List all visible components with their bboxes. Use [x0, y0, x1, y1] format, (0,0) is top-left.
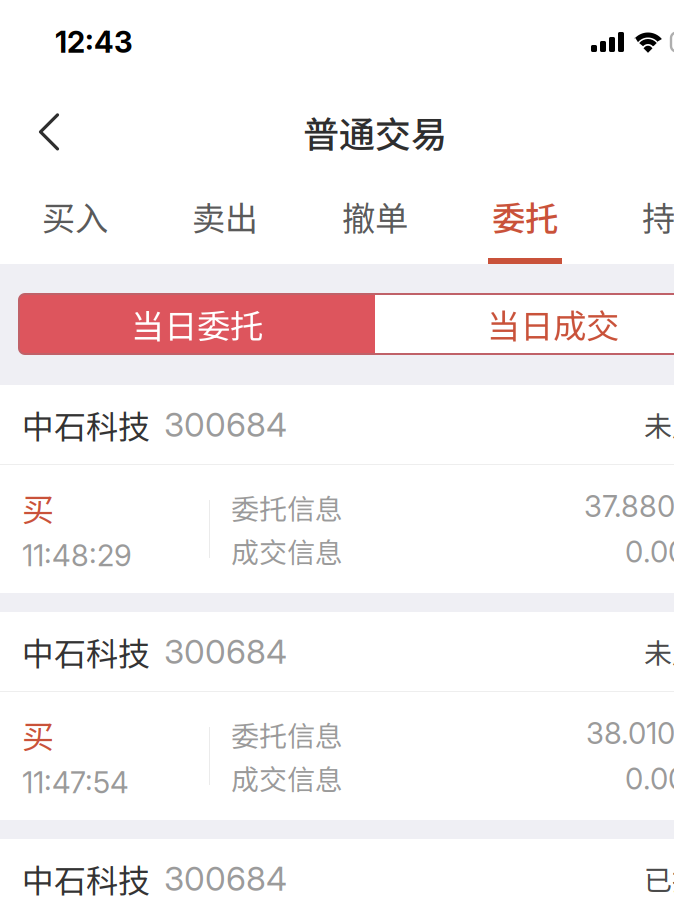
staticText: 普通交易: [303, 106, 447, 158]
staticText: 持仓: [642, 192, 674, 240]
staticText: 未成交: [644, 404, 674, 445]
staticText: 当日委托: [131, 300, 263, 348]
staticText: 买: [22, 485, 54, 531]
staticText: 委托信息: [231, 714, 343, 754]
staticText: 300684: [164, 631, 287, 672]
staticText: 11:48:29: [22, 538, 132, 573]
staticText: 买: [22, 712, 54, 758]
staticText: 买入: [42, 192, 108, 240]
button[interactable]: 买入: [0, 180, 150, 264]
staticText: 中石科技: [22, 628, 150, 675]
staticText: 12:43: [55, 24, 133, 60]
staticText: 300684: [164, 858, 287, 899]
staticText: 300684: [164, 404, 287, 445]
staticText: 中石科技: [22, 855, 150, 902]
staticText: 中石科技: [22, 401, 150, 448]
staticText: 卖出: [192, 192, 258, 240]
button[interactable]: 当日成交: [375, 294, 674, 354]
staticText: 未成交: [644, 631, 674, 672]
button[interactable]: 卖出: [150, 180, 300, 264]
button[interactable]: 撤单: [300, 180, 450, 264]
staticText: 委托: [492, 192, 558, 240]
button[interactable]: 委托: [450, 180, 600, 264]
staticText: 37.880/100: [584, 488, 674, 524]
staticText: 成交信息: [231, 530, 343, 571]
button[interactable]: 中石科技: [0, 385, 674, 593]
button[interactable]: 中石科技: [0, 612, 674, 820]
button[interactable]: 返回: [20, 101, 78, 163]
button[interactable]: 当日委托: [19, 294, 375, 354]
staticText: 0.000/0: [625, 534, 674, 569]
staticText: 38.010/100: [586, 715, 674, 751]
staticText: 0.000/0: [625, 761, 674, 796]
staticText: 撤单: [342, 192, 408, 240]
staticText: 当日成交: [487, 300, 619, 348]
staticText: 委托信息: [231, 487, 343, 527]
staticText: 11:47:54: [22, 765, 129, 800]
staticText: 成交信息: [231, 757, 343, 798]
button[interactable]: 中石科技: [0, 839, 674, 912]
staticText: 已撤单: [644, 858, 674, 899]
button[interactable]: 持仓: [600, 180, 674, 264]
